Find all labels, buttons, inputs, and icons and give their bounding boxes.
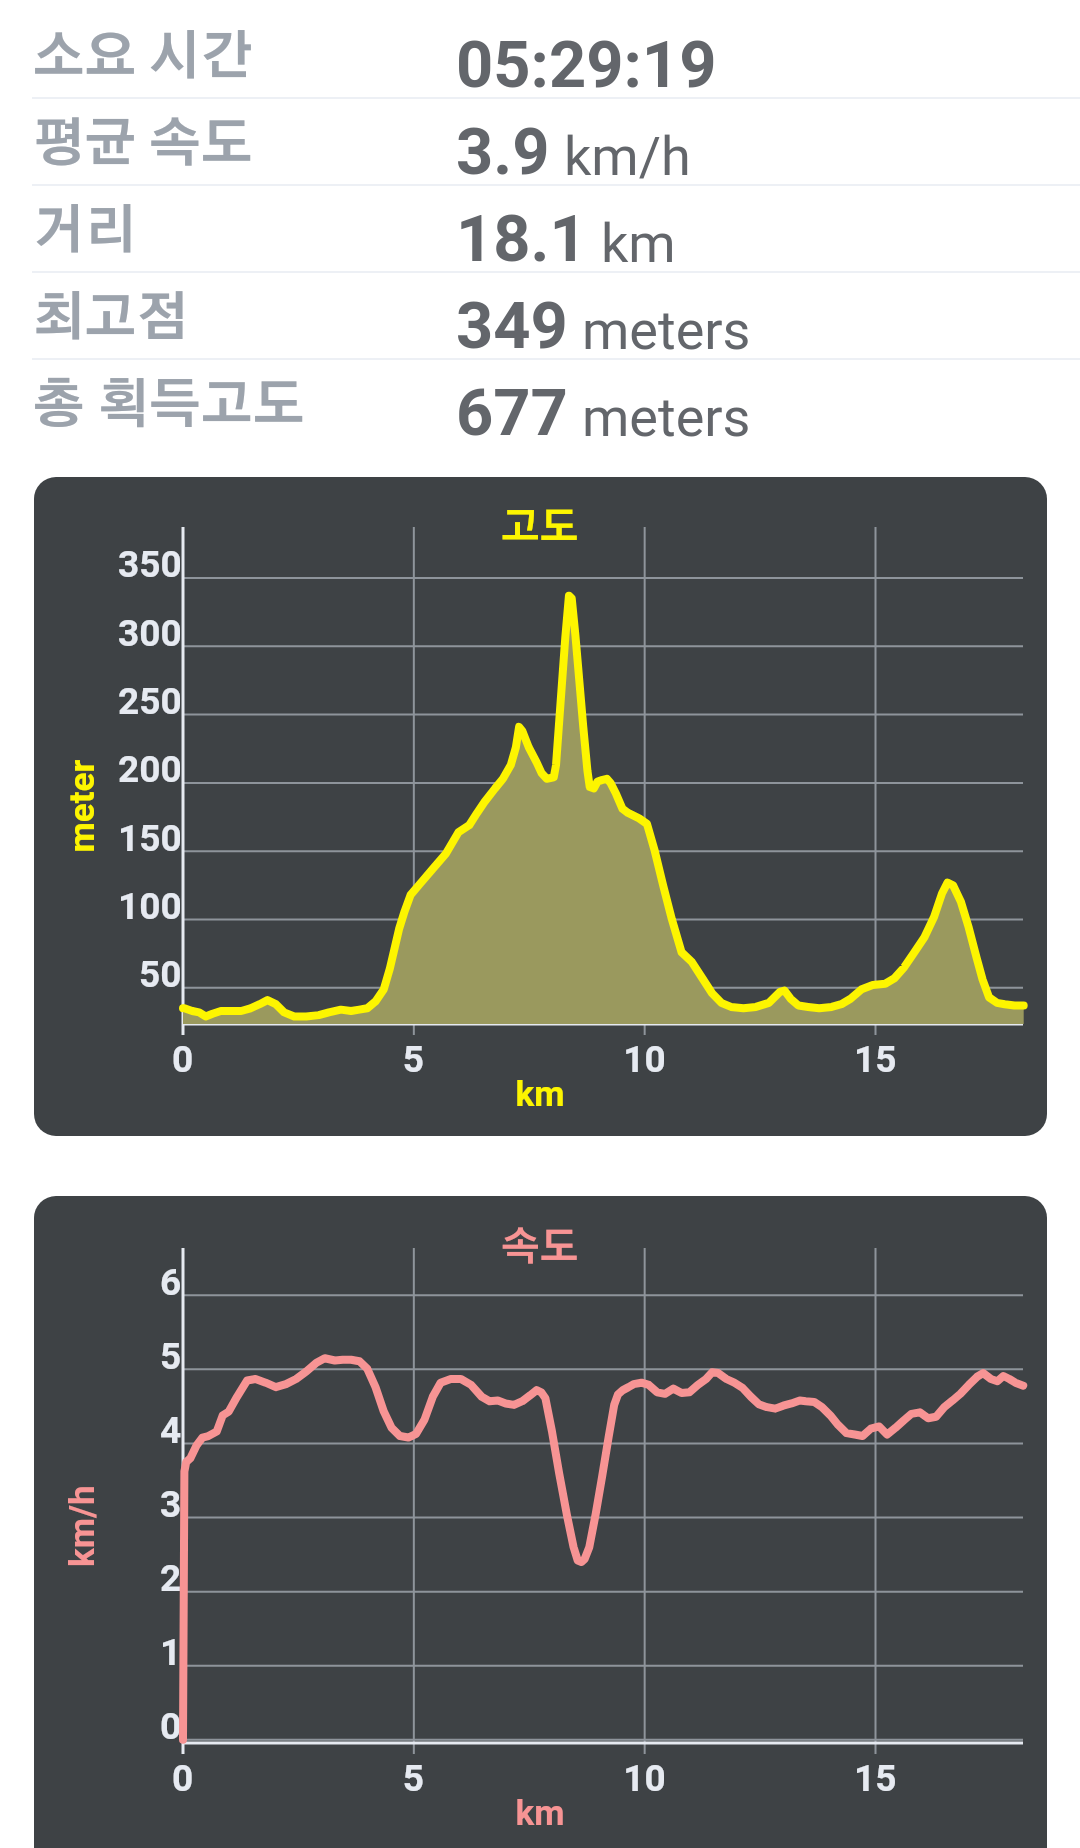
staticText: 평균 속도 (33, 120, 253, 172)
staticText: 3.9 (456, 114, 550, 190)
button[interactable]: 거리 (0, 186, 1080, 273)
staticText: 18.1 (456, 201, 587, 277)
staticText: 05:29:19 (456, 27, 717, 103)
staticText: 거리 (33, 207, 137, 259)
staticText: meters (582, 299, 751, 362)
staticText: meters (582, 386, 751, 449)
button[interactable]: 최고점 (0, 273, 1080, 360)
staticText: km (601, 212, 676, 275)
staticText: 677 (456, 375, 568, 451)
button[interactable] (34, 1196, 1047, 1848)
staticText: 최고점 (33, 294, 189, 346)
button[interactable]: 평균 속도 (0, 99, 1080, 186)
staticText: 소요 시간 (33, 33, 253, 85)
button[interactable] (34, 477, 1047, 1136)
staticText: 총 획득고도 (33, 381, 305, 433)
button[interactable]: 총 획득고도 (0, 360, 1080, 447)
staticText: km/h (564, 125, 691, 188)
button[interactable]: 소요 시간 (0, 12, 1080, 99)
staticText: 349 (456, 288, 568, 364)
